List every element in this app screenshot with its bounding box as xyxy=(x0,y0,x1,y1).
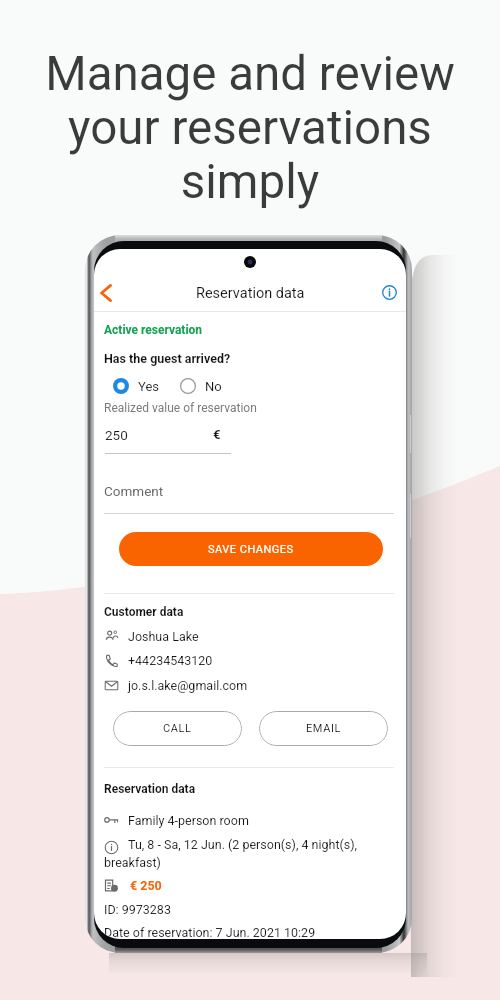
staticText: Reservation data xyxy=(196,285,305,302)
staticText: No xyxy=(205,379,222,394)
button[interactable]: Info xyxy=(377,280,401,304)
staticText: Comment xyxy=(104,483,164,499)
staticText: Date of reservation: 7 Jun. 2021 10:29 xyxy=(104,925,316,939)
staticText: +44234543120 xyxy=(128,653,213,668)
staticText: Family 4-person room xyxy=(128,813,249,828)
button[interactable]: Yes xyxy=(113,378,159,394)
staticText: Manage and review your reservations simp… xyxy=(21,46,479,209)
staticText: SAVE CHANGES xyxy=(208,543,294,556)
staticText: Active reservation xyxy=(104,323,203,337)
staticText: 250 xyxy=(105,427,128,443)
staticText: € 250 xyxy=(130,878,162,893)
staticText: breakfast) xyxy=(104,855,161,870)
button[interactable]: SAVE CHANGES xyxy=(119,532,383,566)
staticText: Reservation data xyxy=(104,782,196,796)
staticText: CALL xyxy=(163,722,192,735)
staticText: € xyxy=(213,427,221,442)
button[interactable]: CALL xyxy=(113,711,242,746)
staticText: Joshua Lake xyxy=(128,629,199,644)
button[interactable]: EMAIL xyxy=(259,711,388,746)
staticText: Realized value of reservation xyxy=(104,401,257,415)
staticText: Yes xyxy=(138,379,159,394)
button[interactable]: Back xyxy=(94,279,120,307)
button[interactable]: No xyxy=(180,378,222,394)
staticText: jo.s.l.ake@gmail.com xyxy=(128,678,248,693)
staticText: Customer data xyxy=(104,605,184,619)
staticText: ID: 9973283 xyxy=(104,902,171,917)
staticText: Tu, 8 - Sa, 12 Jun. (2 person(s), 4 nigh… xyxy=(128,837,358,852)
staticText: Has the guest arrived? xyxy=(104,351,231,366)
staticText: EMAIL xyxy=(306,722,342,735)
